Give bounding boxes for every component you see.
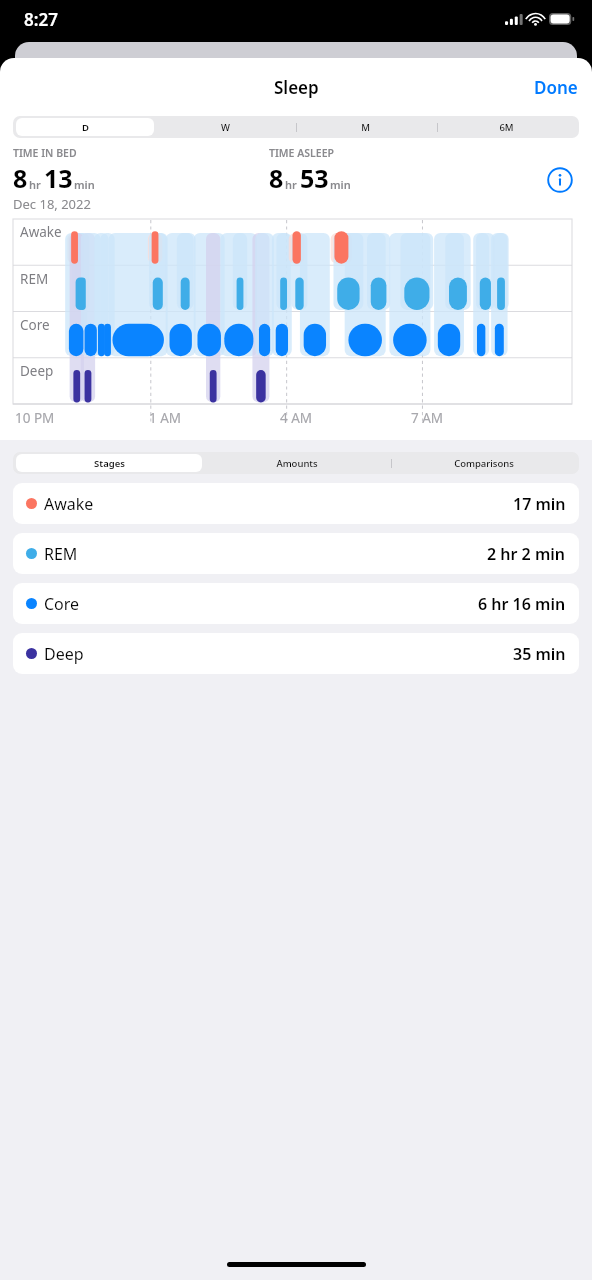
staticText: 10 PM	[15, 409, 55, 427]
staticText: TIME IN BED	[13, 146, 77, 160]
staticText: 13	[44, 161, 73, 195]
staticText: W	[221, 121, 230, 134]
staticText: min	[330, 177, 351, 192]
staticText: 8	[13, 161, 28, 195]
button[interactable]: Core	[13, 583, 579, 624]
button[interactable]: Stages	[16, 454, 202, 472]
staticText: Core	[44, 593, 80, 615]
staticText: 35 min	[513, 643, 566, 665]
button[interactable]: M	[296, 118, 435, 136]
staticText: 8	[269, 161, 284, 195]
button[interactable]: Done	[520, 68, 592, 107]
button[interactable]: 6M	[437, 118, 576, 136]
staticText: 2 hr 2 min	[487, 543, 566, 565]
staticText: min	[74, 177, 95, 192]
staticText: REM	[20, 270, 49, 288]
staticText: D	[82, 121, 89, 134]
button[interactable]: Amounts	[204, 454, 389, 472]
staticText: Stages	[94, 457, 125, 470]
staticText: 6M	[499, 121, 514, 134]
staticText: Comparisons	[454, 457, 514, 470]
staticText: Awake	[44, 493, 94, 515]
button[interactable]: Comparisons	[391, 454, 576, 472]
staticText: Deep	[44, 643, 84, 665]
staticText: Amounts	[276, 457, 318, 470]
button[interactable]: W	[156, 118, 294, 136]
staticText: Awake	[20, 223, 62, 241]
staticText: 17 min	[513, 493, 566, 515]
staticText: 4 AM	[280, 409, 313, 427]
button[interactable]: D	[16, 118, 154, 136]
button[interactable]: Info	[545, 165, 575, 195]
staticText: 6 hr 16 min	[478, 593, 566, 615]
staticText: Dec 18, 2022	[13, 195, 91, 213]
staticText: Sleep	[274, 76, 319, 99]
staticText: 7 AM	[411, 409, 444, 427]
button[interactable]: Awake	[13, 483, 579, 524]
button[interactable]: REM	[13, 533, 579, 574]
button[interactable]: Deep	[13, 633, 579, 674]
staticText: TIME ASLEEP	[269, 146, 334, 160]
staticText: M	[361, 121, 370, 134]
staticText: hr	[29, 177, 41, 192]
staticText: Deep	[20, 362, 54, 380]
staticText: Core	[20, 316, 50, 334]
staticText: hr	[285, 177, 297, 192]
staticText: 53	[300, 161, 329, 195]
staticText: 8:27	[24, 8, 58, 31]
staticText: 1 AM	[149, 409, 182, 427]
staticText: REM	[44, 543, 78, 565]
staticText: Done	[534, 76, 578, 99]
